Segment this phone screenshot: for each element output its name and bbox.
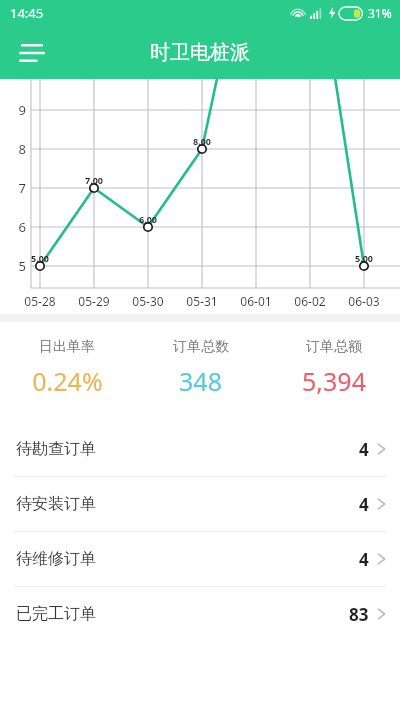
- staticText: 待安装订单: [16, 494, 359, 514]
- staticText: 已完工订单: [16, 604, 349, 624]
- staticText: 05-29: [68, 293, 120, 309]
- staticText: 5: [0, 257, 26, 275]
- staticText: 7.00: [74, 174, 114, 186]
- staticText: 31%: [368, 5, 392, 21]
- button[interactable]: 已完工订单: [0, 587, 400, 641]
- staticText: 订单总额: [306, 338, 362, 356]
- staticText: 6.00: [128, 213, 168, 225]
- button[interactable]: 待安装订单: [0, 477, 400, 531]
- staticText: 05-28: [14, 293, 66, 309]
- staticText: 待勘查订单: [16, 439, 359, 459]
- staticText: 05-30: [122, 293, 174, 309]
- staticText: 4: [359, 548, 369, 571]
- staticText: 6: [0, 218, 26, 236]
- staticText: 时卫电桩派: [150, 40, 250, 65]
- button[interactable]: 日出单率: [0, 330, 134, 406]
- staticText: 8.00: [182, 135, 222, 147]
- staticText: 4: [359, 493, 369, 516]
- staticText: 4: [359, 438, 369, 461]
- staticText: 9: [0, 101, 26, 119]
- staticText: 14:45: [10, 4, 44, 22]
- staticText: 8: [0, 140, 26, 158]
- button[interactable]: 待维修订单: [0, 532, 400, 586]
- staticText: 06-01: [230, 293, 282, 309]
- staticText: 05-31: [176, 293, 228, 309]
- staticText: 5,394: [302, 364, 366, 398]
- staticText: 06-02: [284, 293, 336, 309]
- staticText: 5.00: [344, 252, 384, 264]
- staticText: 06-03: [338, 293, 390, 309]
- button[interactable]: 订单总额: [267, 330, 400, 406]
- staticText: 7: [0, 179, 26, 197]
- staticText: 83: [349, 603, 369, 626]
- staticText: 5.00: [20, 252, 60, 264]
- staticText: 日出单率: [39, 338, 95, 356]
- staticText: 订单总数: [173, 338, 229, 356]
- button[interactable]: 待勘查订单: [0, 422, 400, 476]
- button[interactable]: Menu: [10, 31, 54, 75]
- staticText: 0.24%: [32, 364, 103, 398]
- staticText: 待维修订单: [16, 549, 359, 569]
- button[interactable]: 订单总数: [134, 330, 267, 406]
- staticText: 348: [179, 364, 222, 398]
